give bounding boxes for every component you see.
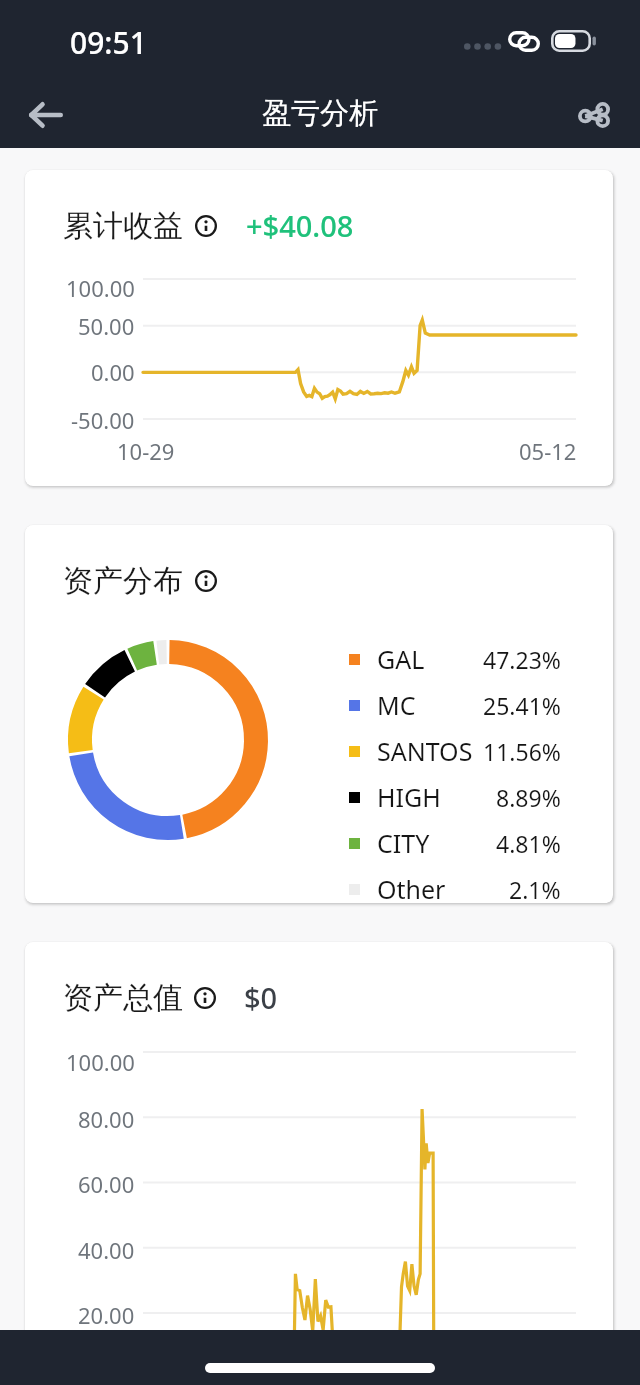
staticText: 4.81%	[496, 828, 561, 859]
staticText: 60.00	[78, 1169, 135, 1199]
staticText: 2.1%	[509, 874, 561, 903]
staticText: 资产总值	[63, 979, 183, 1017]
staticText: 10-29	[117, 436, 175, 466]
staticText: 40.00	[78, 1235, 135, 1265]
button[interactable]: Other	[347, 866, 561, 903]
button[interactable]: MC	[347, 682, 561, 728]
staticText: MC	[377, 688, 416, 722]
staticText: 20.00	[78, 1300, 135, 1330]
staticText: 盈亏分析	[262, 95, 378, 132]
staticText: 50.00	[78, 311, 135, 341]
staticText: 11.56%	[483, 736, 561, 767]
button[interactable]: Share	[561, 82, 627, 148]
staticText: +$40.08	[246, 206, 354, 245]
staticText: 资产分布	[63, 562, 183, 600]
staticText: 累计收益	[63, 207, 183, 245]
staticText: 05-12	[519, 436, 577, 466]
staticText: 0.00	[91, 357, 135, 387]
button[interactable]: GAL	[347, 636, 561, 682]
button[interactable]: SANTOS	[347, 728, 561, 774]
button[interactable]: CITY	[347, 820, 561, 866]
staticText: 09:51	[70, 22, 147, 63]
staticText: 100.00	[66, 1047, 135, 1077]
staticText: GAL	[377, 642, 425, 676]
staticText: Other	[377, 872, 446, 903]
staticText: -50.00	[71, 405, 135, 435]
button[interactable]: HIGH	[347, 774, 561, 820]
staticText: 25.41%	[483, 690, 561, 721]
staticText: 100.00	[66, 273, 135, 303]
staticText: HIGH	[377, 780, 441, 814]
staticText: $0	[244, 978, 278, 1017]
staticText: CITY	[377, 826, 430, 860]
staticText: 47.23%	[483, 644, 561, 675]
staticText: SANTOS	[377, 734, 473, 768]
button[interactable]: Back	[13, 82, 79, 148]
staticText: 80.00	[78, 1104, 135, 1134]
staticText: 8.89%	[496, 782, 561, 813]
